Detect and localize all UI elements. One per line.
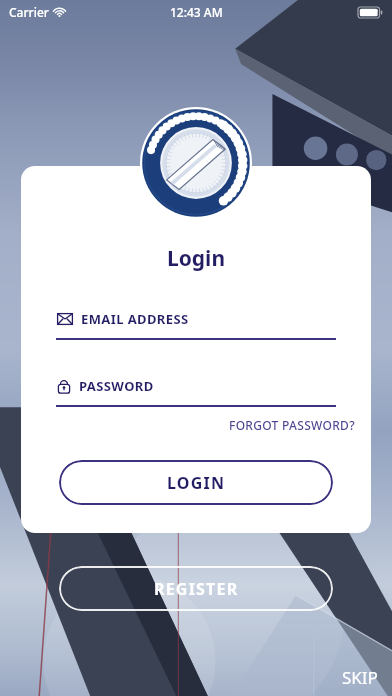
staticText: SKIP — [342, 666, 378, 689]
staticText: FORGOT PASSWORD? — [229, 417, 355, 433]
button[interactable]: EMAIL ADDRESS — [57, 309, 355, 329]
staticText: Login — [21, 244, 371, 273]
staticText: LOGIN — [167, 472, 226, 494]
staticText: REGISTER — [154, 578, 239, 600]
button[interactable]: LOGIN — [59, 460, 333, 505]
staticText: 12:43 AM — [170, 4, 223, 20]
button[interactable]: FORGOT PASSWORD? — [21, 415, 355, 435]
staticText: Carrier — [9, 4, 49, 20]
button[interactable]: REGISTER — [59, 566, 333, 611]
button[interactable]: SKIP — [338, 662, 382, 693]
button[interactable]: PASSWORD — [57, 376, 355, 396]
staticText: PASSWORD — [79, 377, 154, 395]
staticText: EMAIL ADDRESS — [81, 310, 189, 328]
other: Ironworkers Local 433 logo — [140, 107, 252, 219]
